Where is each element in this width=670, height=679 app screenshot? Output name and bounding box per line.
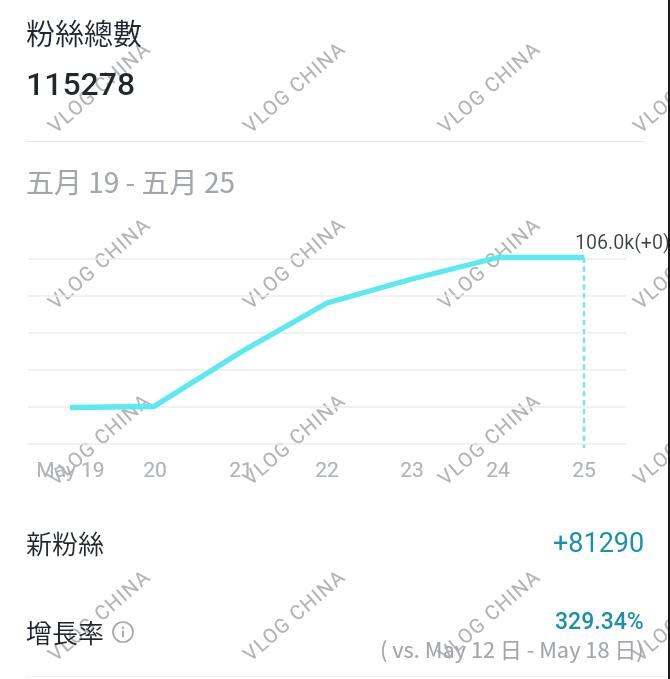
staticText: 22 <box>315 458 339 483</box>
staticText: VLOG CHINA <box>43 36 155 137</box>
staticText: VLOG CHINA <box>628 388 670 489</box>
staticText: May 19 <box>36 458 105 483</box>
staticText: VLOG CHINA <box>238 564 350 665</box>
staticText: 20 <box>143 458 167 483</box>
staticText: VLOG CHINA <box>43 564 155 665</box>
staticText: 25 <box>572 458 596 483</box>
staticText: +81290 <box>553 527 645 559</box>
staticText: VLOG CHINA <box>433 388 545 489</box>
staticText: 23 <box>400 458 424 483</box>
staticText: VLOG CHINA <box>238 212 350 313</box>
staticText: VLOG CHINA <box>433 212 545 313</box>
staticText: VLOG CHINA <box>238 388 350 489</box>
staticText: 329.34% <box>555 608 644 635</box>
staticText: VLOG CHINA <box>433 564 545 665</box>
staticText: 106.0k(+0) <box>575 231 670 254</box>
button[interactable]: 增長率 <box>0 596 670 672</box>
staticText: 21 <box>229 458 253 483</box>
staticText: 115278 <box>26 65 136 103</box>
staticText: 24 <box>486 458 510 483</box>
staticText: VLOG CHINA <box>238 36 350 137</box>
button[interactable]: 新粉絲 <box>0 505 670 581</box>
staticText: ( vs. May 12 日 - May 18 日) <box>380 633 644 665</box>
staticText: 新粉絲 <box>26 524 105 562</box>
staticText: VLOG CHINA <box>628 36 670 137</box>
staticText: VLOG CHINA <box>628 212 670 313</box>
staticText: 粉絲總數 <box>26 11 143 53</box>
staticText: VLOG CHINA <box>43 388 155 489</box>
staticText: VLOG CHINA <box>433 36 545 137</box>
other: Info <box>112 621 134 643</box>
staticText: 五月 19 - 五月 25 <box>26 161 235 202</box>
staticText: VLOG CHINA <box>43 212 155 313</box>
staticText: VLOG CHINA <box>628 564 670 665</box>
staticText: 增長率 <box>26 613 105 651</box>
